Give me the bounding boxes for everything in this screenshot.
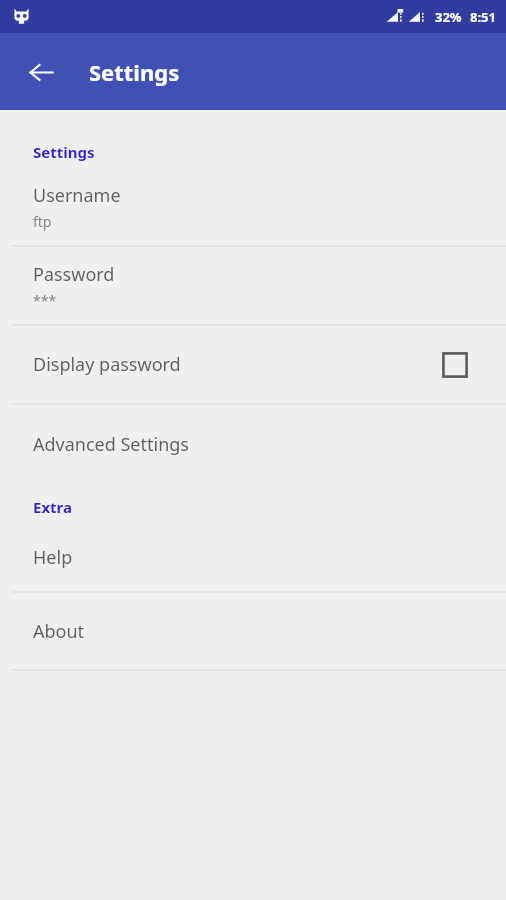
staticText: 32% [435, 8, 462, 26]
button[interactable]: Help [0, 523, 506, 591]
staticText: Username [33, 183, 121, 208]
staticText: ftp [33, 212, 52, 231]
staticText: Advanced Settings [33, 432, 189, 457]
button[interactable]: About [0, 593, 506, 669]
button[interactable]: Back [18, 49, 64, 95]
staticText: About [33, 619, 85, 644]
staticText: Help [33, 545, 73, 570]
staticText: Extra [33, 497, 72, 517]
staticText: Password [33, 262, 115, 287]
staticText: Display password [33, 352, 442, 377]
staticText: Settings [89, 57, 180, 87]
staticText: Settings [33, 142, 95, 162]
staticText: *** [33, 291, 57, 310]
button[interactable]: Username [0, 168, 506, 245]
button[interactable]: Display password [0, 326, 506, 403]
staticText: 8:51 [470, 8, 496, 26]
button[interactable]: Advanced Settings [0, 405, 506, 483]
button[interactable]: Password [0, 247, 506, 324]
